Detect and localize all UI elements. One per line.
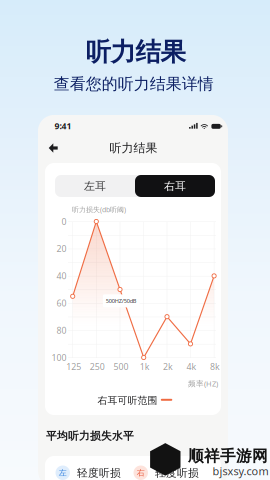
staticText: 右耳 bbox=[164, 179, 186, 193]
staticText: 左 bbox=[59, 468, 67, 478]
staticText: 轻度听损 bbox=[77, 466, 121, 480]
staticText: 右耳可听范围 bbox=[97, 394, 157, 407]
staticText: 60 bbox=[56, 297, 66, 309]
staticText: 听力结果 bbox=[86, 36, 186, 68]
staticText: 左耳 bbox=[84, 179, 106, 193]
staticText: 500HZ/50dB bbox=[106, 297, 137, 305]
staticText: 250 bbox=[90, 360, 105, 372]
button[interactable]: 右耳 bbox=[135, 175, 215, 197]
staticText: 平均听力损失水平 bbox=[46, 429, 134, 443]
staticText: 顺祥手游网 bbox=[188, 446, 268, 466]
staticText: 1k bbox=[140, 360, 150, 372]
staticText: bjsxsy.com bbox=[212, 464, 268, 478]
staticText: 9:41 bbox=[54, 120, 71, 132]
staticText: 0 bbox=[61, 215, 66, 227]
staticText: 500 bbox=[113, 360, 128, 372]
staticText: 40 bbox=[56, 270, 66, 282]
staticText: 4k bbox=[186, 360, 196, 372]
staticText: 右 bbox=[137, 468, 145, 478]
staticText: 轻度听损 bbox=[155, 466, 199, 480]
staticText: 20 bbox=[56, 243, 66, 255]
staticText: 查看您的听力结果详情 bbox=[54, 74, 214, 94]
staticText: 8k bbox=[210, 360, 220, 372]
staticText: 80 bbox=[56, 324, 66, 336]
staticText: 频率(HZ) bbox=[188, 378, 218, 389]
staticText: 125 bbox=[66, 360, 81, 372]
staticText: 100 bbox=[51, 351, 66, 363]
staticText: 2k bbox=[163, 360, 173, 372]
staticText: 听力损失(db听阈) bbox=[72, 205, 126, 214]
button[interactable]: Back bbox=[44, 139, 62, 157]
button[interactable]: 左耳 bbox=[55, 175, 135, 197]
staticText: 听力结果 bbox=[109, 140, 157, 155]
